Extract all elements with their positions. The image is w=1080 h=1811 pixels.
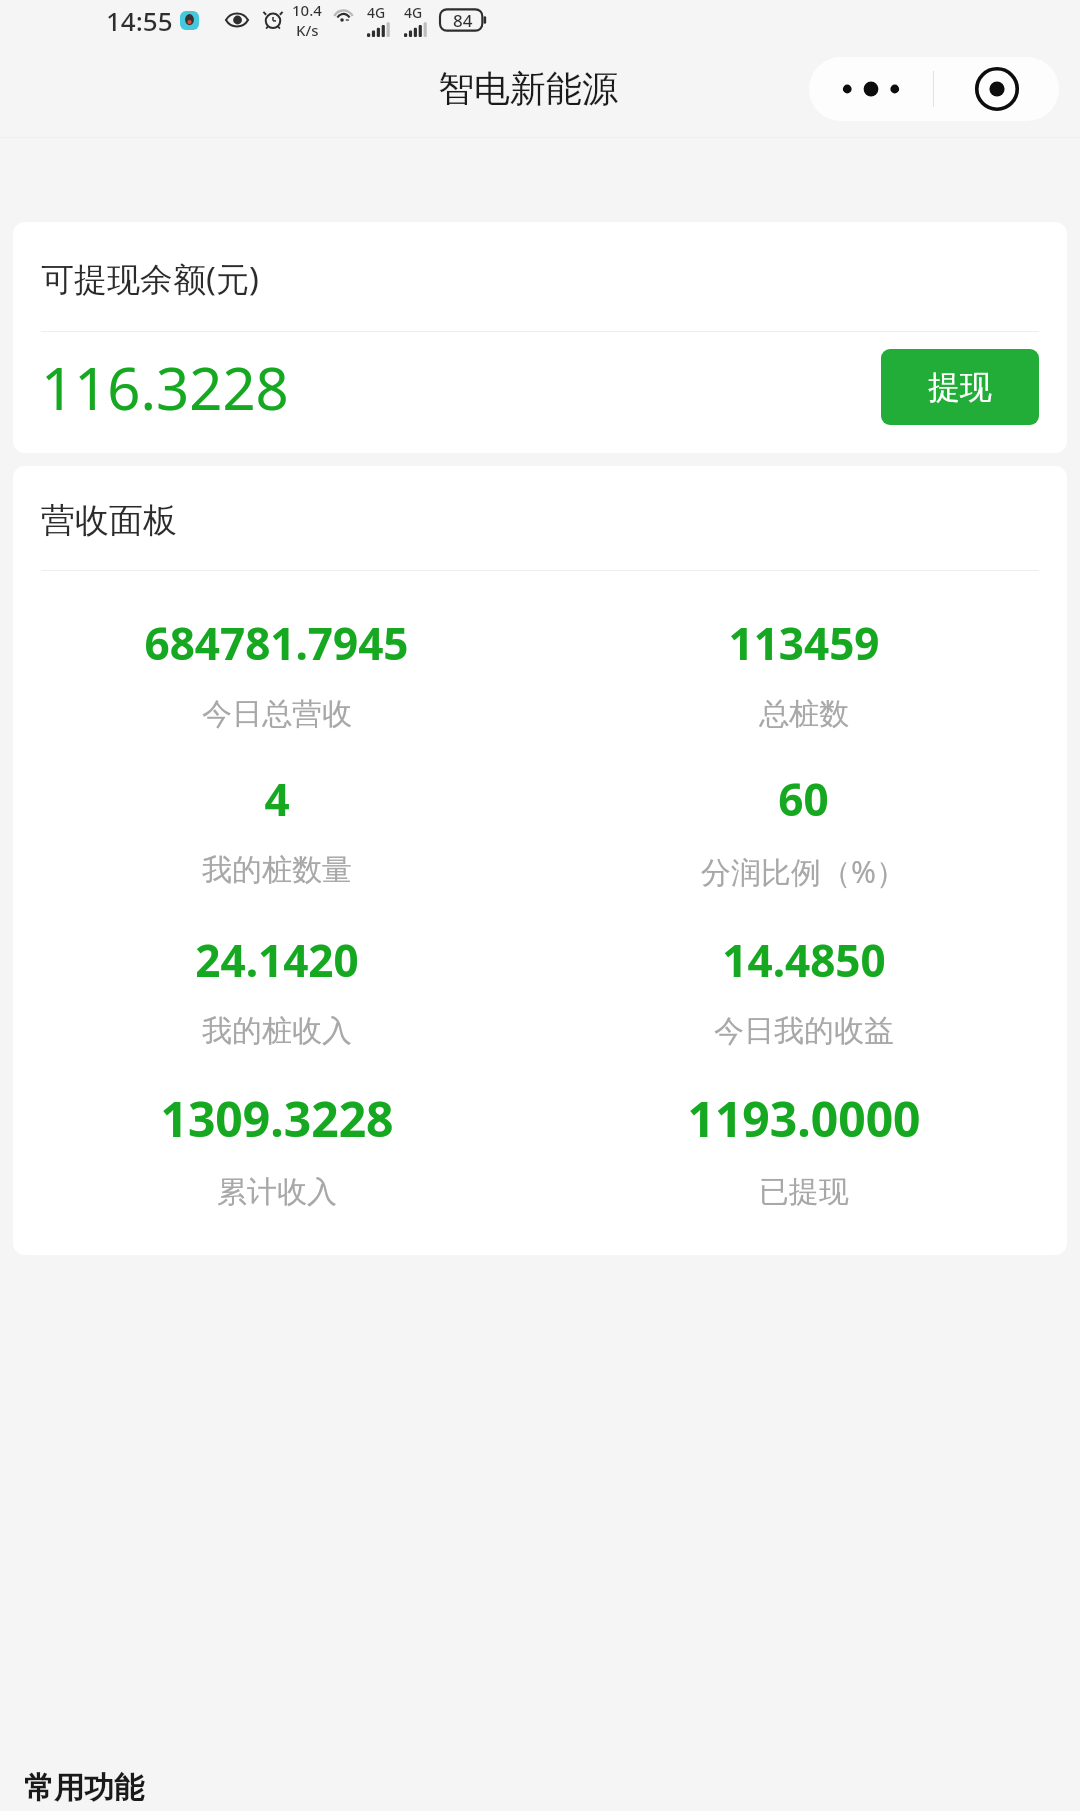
staticText: 10.4 (292, 0, 322, 20)
staticText: 1309.3228 (160, 1086, 394, 1151)
staticText: 我的桩收入 (202, 1012, 352, 1050)
staticText: 可提现余额(元) (41, 256, 259, 301)
button[interactable]: 营收面板 (13, 466, 1067, 1255)
button[interactable]: 14.4850 (540, 930, 1067, 1050)
staticText: 14.4850 (722, 930, 886, 990)
staticText: 60 (778, 769, 829, 829)
button[interactable]: 24.1420 (13, 930, 540, 1050)
staticText: 提现 (928, 367, 992, 407)
staticText: 1193.0000 (687, 1086, 921, 1151)
staticText: 113459 (728, 613, 880, 673)
staticText: 14:55 (106, 3, 173, 38)
button[interactable]: 1309.3228 (13, 1086, 540, 1211)
staticText: 684781.7945 (144, 613, 409, 673)
staticText: 累计收入 (217, 1173, 337, 1211)
staticText: K/s (296, 20, 319, 40)
button[interactable]: Close (934, 57, 1059, 121)
staticText: 分润比例（%） (701, 851, 906, 892)
button[interactable]: 60 (540, 769, 1067, 892)
staticText: 营收面板 (41, 499, 177, 542)
button[interactable]: 684781.7945 (13, 613, 540, 733)
staticText: 24.1420 (195, 930, 359, 990)
staticText: 智电新能源 (438, 66, 618, 111)
button[interactable]: 1193.0000 (540, 1086, 1067, 1211)
button[interactable]: 提现 (881, 349, 1039, 425)
button[interactable]: 4 (13, 769, 540, 889)
staticText: 4G (367, 3, 386, 22)
staticText: 总桩数 (759, 695, 849, 733)
button[interactable]: More (809, 57, 933, 121)
staticText: 已提现 (759, 1173, 849, 1211)
staticText: 84 (453, 9, 473, 32)
staticText: 今日总营收 (202, 695, 352, 733)
staticText: 常用功能 (24, 1769, 144, 1807)
staticText: 116.3228 (41, 348, 881, 427)
staticText: 4G (404, 3, 423, 22)
staticText: 4 (264, 769, 290, 829)
staticText: 今日我的收益 (714, 1012, 894, 1050)
button[interactable]: 可提现余额(元) (13, 222, 1067, 453)
staticText: 我的桩数量 (202, 851, 352, 889)
button[interactable]: 113459 (540, 613, 1067, 733)
